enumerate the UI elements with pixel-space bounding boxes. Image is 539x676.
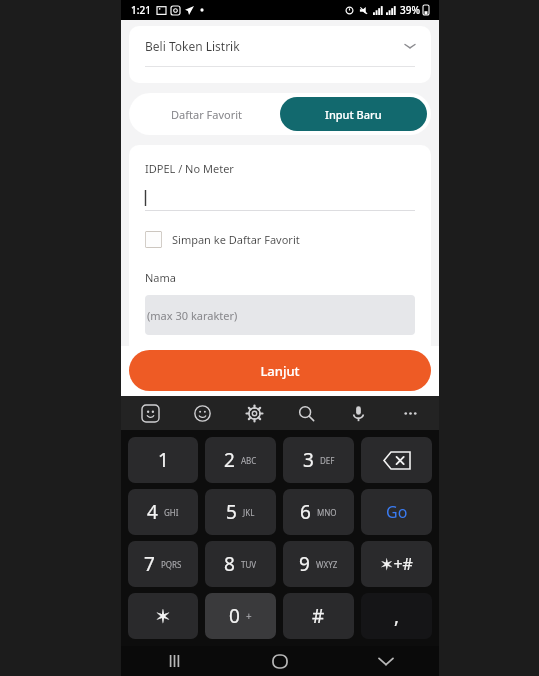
staticText: ABC: [241, 455, 257, 466]
button[interactable]: More options: [395, 398, 425, 428]
staticText: WXYZ: [316, 559, 338, 570]
staticText: 3: [303, 447, 314, 473]
staticText: 7: [144, 551, 155, 577]
button[interactable]: ✶: [128, 593, 198, 639]
button[interactable]: 8: [205, 541, 276, 587]
staticText: #: [312, 603, 325, 629]
button[interactable]: Simpan ke Daftar Favorit: [145, 231, 300, 248]
staticText: DEF: [320, 455, 335, 466]
staticText: JKL: [243, 507, 255, 518]
staticText: PQRS: [161, 559, 182, 570]
staticText: 2: [224, 447, 235, 473]
button[interactable]: 6: [283, 489, 354, 535]
button[interactable]: ✶+#: [361, 541, 432, 587]
staticText: Simpan ke Daftar Favorit: [172, 232, 300, 247]
staticText: Beli Token Listrik: [145, 38, 240, 54]
button[interactable]: Beli Token Listrik: [129, 26, 431, 66]
button[interactable]: Voice input: [343, 398, 373, 428]
staticText: 9: [299, 551, 310, 577]
button[interactable]: 1: [128, 437, 198, 483]
staticText: IDPEL / No Meter: [145, 161, 234, 176]
button[interactable]: Backspace: [361, 437, 432, 483]
button[interactable]: Input Baru: [280, 97, 427, 131]
staticText: +: [246, 609, 252, 623]
staticText: 4: [147, 499, 158, 525]
button[interactable]: ,: [361, 593, 432, 639]
button[interactable]: Daftar Favorit: [133, 97, 280, 131]
staticText: TUV: [241, 559, 257, 570]
staticText: 5: [226, 499, 237, 525]
button[interactable]: Recent apps: [121, 646, 227, 676]
button[interactable]: Hide keyboard: [333, 646, 439, 676]
staticText: Input Baru: [325, 107, 382, 122]
button[interactable]: Settings: [239, 398, 269, 428]
staticText: MNO: [317, 507, 337, 518]
button[interactable]: Go: [361, 489, 432, 535]
button[interactable]: 4: [128, 489, 198, 535]
button[interactable]: #: [283, 593, 354, 639]
staticText: 0: [229, 603, 240, 629]
staticText: 8: [224, 551, 235, 577]
button[interactable]: 3: [283, 437, 354, 483]
button[interactable]: 9: [283, 541, 354, 587]
staticText: 1:21: [131, 3, 151, 17]
staticText: Lanjut: [260, 362, 300, 380]
button[interactable]: 2: [205, 437, 276, 483]
button[interactable]: 0: [205, 593, 276, 639]
staticText: Daftar Favorit: [171, 107, 243, 122]
staticText: 39%: [400, 3, 420, 17]
staticText: ,: [394, 603, 400, 629]
staticText: Go: [386, 501, 408, 523]
staticText: (max 30 karakter): [147, 308, 238, 323]
staticText: ✶: [155, 605, 171, 627]
staticText: 6: [300, 499, 311, 525]
button[interactable]: Lanjut: [129, 350, 431, 391]
staticText: 1: [158, 447, 169, 473]
button[interactable]: (max 30 karakter): [145, 295, 415, 335]
button[interactable]: Stickers: [135, 398, 165, 428]
button[interactable]: Home: [227, 646, 333, 676]
staticText: Nama: [145, 270, 176, 285]
button[interactable]: 7: [128, 541, 198, 587]
button[interactable]: Emoji: [187, 398, 217, 428]
button[interactable]: Search: [291, 398, 321, 428]
staticText: ✶+#: [380, 553, 413, 575]
button[interactable]: 5: [205, 489, 276, 535]
staticText: GHI: [164, 507, 179, 518]
